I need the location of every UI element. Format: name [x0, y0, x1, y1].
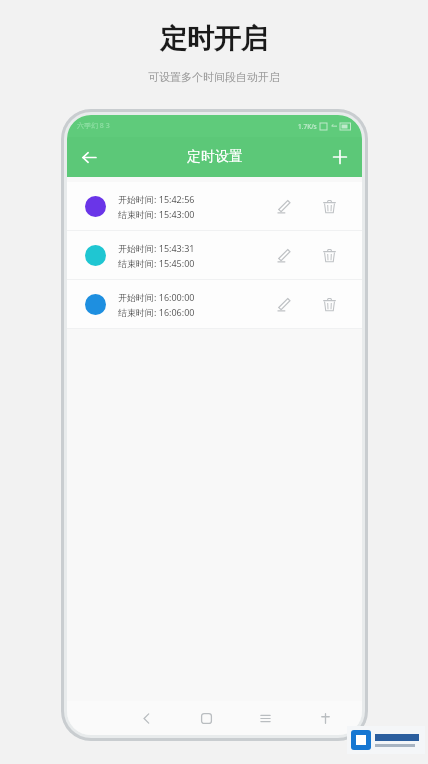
button[interactable]: Back [67, 137, 111, 177]
staticText: 开始时间: 15:43:31 [118, 242, 195, 254]
button[interactable]: Edit [266, 238, 300, 272]
button[interactable]: Add [318, 137, 362, 177]
button[interactable]: 开始时间: 15:42:56 [67, 182, 362, 230]
button[interactable]: Edit [266, 287, 300, 321]
staticText: 1.7K/s [298, 122, 317, 131]
button[interactable]: Delete [312, 287, 346, 321]
button[interactable]: Delete [312, 238, 346, 272]
button[interactable]: 开始时间: 16:00:00 [67, 280, 362, 328]
button[interactable]: Back [131, 703, 161, 733]
staticText: 结束时间: 15:45:00 [118, 257, 195, 269]
staticText: 六季幻 8 3 [77, 121, 110, 131]
button[interactable]: Recents [250, 703, 280, 733]
button[interactable]: 开始时间: 15:43:31 [67, 231, 362, 279]
staticText: 结束时间: 16:06:00 [118, 306, 195, 318]
button[interactable]: More [310, 703, 340, 733]
staticText: 结束时间: 15:43:00 [118, 208, 195, 220]
staticText: 定时设置 [187, 148, 243, 166]
staticText: 定时开启 [160, 22, 268, 56]
button[interactable]: Home [191, 703, 221, 733]
staticText: 开始时间: 15:42:56 [118, 193, 195, 205]
staticText: 可设置多个时间段自动开启 [148, 70, 280, 84]
button[interactable]: Edit [266, 189, 300, 223]
button[interactable]: Delete [312, 189, 346, 223]
staticText: 开始时间: 16:00:00 [118, 291, 195, 303]
